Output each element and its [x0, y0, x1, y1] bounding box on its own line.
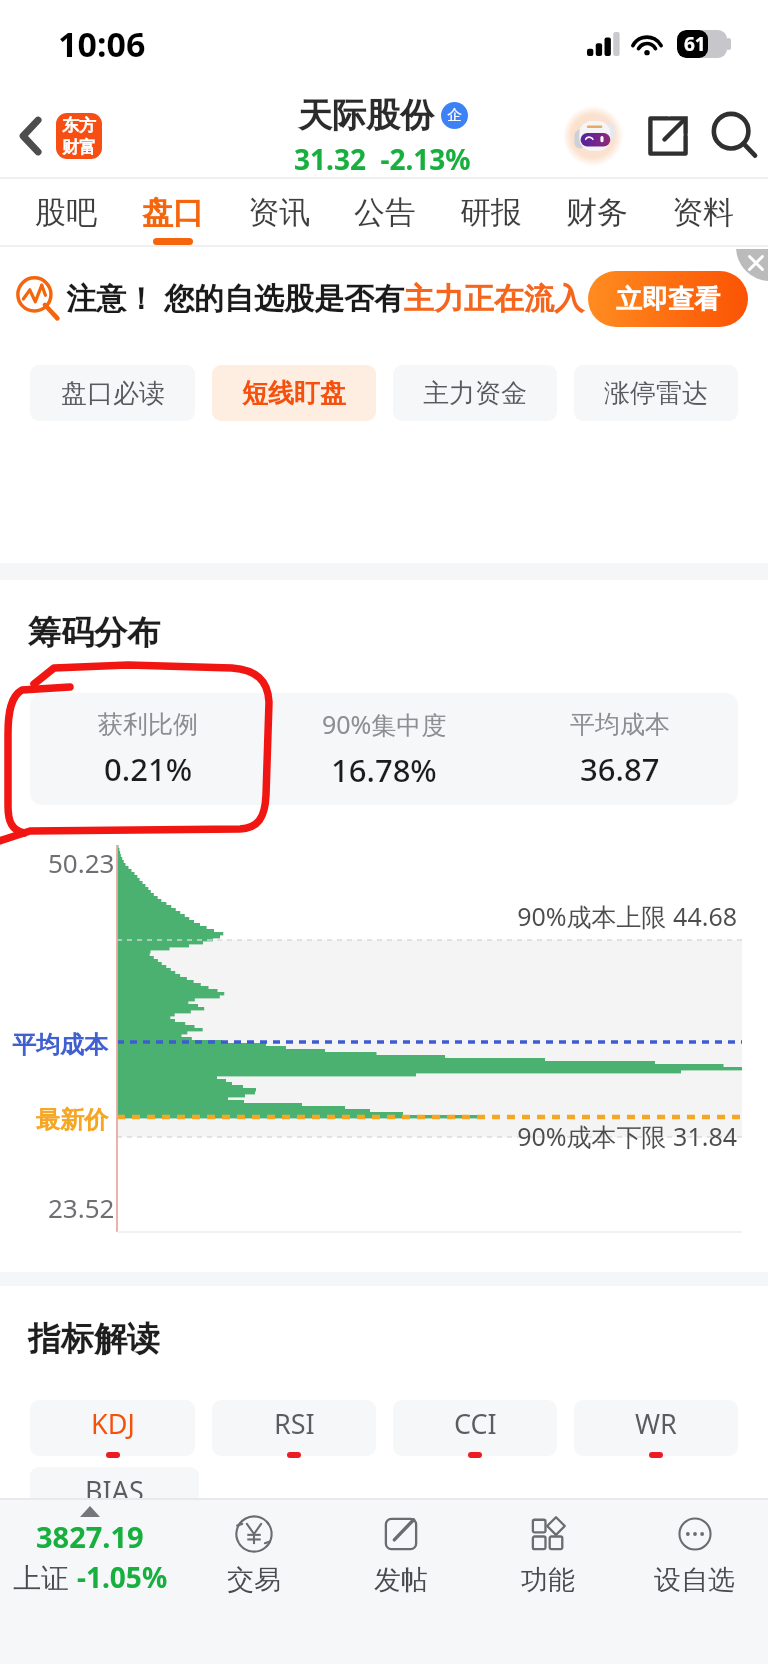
- button[interactable]: Search: [706, 108, 762, 164]
- staticText: RSI: [274, 1405, 315, 1442]
- staticText: 平均成本: [8, 1030, 108, 1060]
- button[interactable]: 盘口: [119, 179, 226, 247]
- button[interactable]: BIAS: [30, 1467, 199, 1523]
- staticText: 主力资金: [423, 377, 527, 410]
- staticText: 23.52: [48, 1190, 115, 1225]
- staticText: 东方: [62, 115, 96, 136]
- staticText: 16.78%: [331, 749, 437, 791]
- staticText: 发帖: [374, 1563, 428, 1597]
- staticText: -1.05%: [77, 1558, 168, 1596]
- button[interactable]: AI assistant: [562, 105, 624, 167]
- staticText: 50.23: [48, 845, 115, 880]
- staticText: 财务: [566, 193, 628, 232]
- button[interactable]: Back: [6, 111, 56, 161]
- staticText: 企: [447, 106, 462, 125]
- staticText: 90%集中度: [322, 707, 447, 741]
- button[interactable]: 研报: [438, 179, 544, 247]
- staticText: 获利比例: [98, 709, 198, 740]
- staticText: CCI: [454, 1405, 497, 1442]
- staticText: 筹码分布: [28, 612, 160, 654]
- staticText: BIAS: [85, 1472, 144, 1509]
- staticText: 10:06: [58, 21, 146, 67]
- staticText: 注意！: [66, 280, 156, 318]
- staticText: 功能: [521, 1563, 575, 1597]
- staticText: 公告: [354, 193, 416, 232]
- button[interactable]: 设自选: [621, 1513, 768, 1597]
- staticText: 3827.19: [36, 1517, 144, 1556]
- staticText: 您的自选股是否有: [164, 280, 404, 318]
- button[interactable]: 交易: [180, 1513, 327, 1597]
- staticText: 上证: [13, 1558, 77, 1596]
- button[interactable]: 公告: [332, 179, 438, 247]
- button[interactable]: 资料: [650, 179, 756, 247]
- button[interactable]: 股吧: [12, 179, 119, 247]
- staticText: WR: [635, 1405, 677, 1442]
- staticText: 资讯: [248, 193, 310, 232]
- staticText: 资料: [672, 193, 734, 232]
- staticText: 90%成本上限 44.68: [437, 899, 737, 933]
- staticText: 最新价: [8, 1105, 108, 1135]
- staticText: 平均成本: [570, 709, 670, 740]
- button[interactable]: RSI: [212, 1400, 376, 1456]
- button[interactable]: 资讯: [226, 179, 332, 247]
- staticText: 研报: [460, 193, 522, 232]
- button[interactable]: WR: [574, 1400, 738, 1456]
- staticText: 盘口必读: [61, 377, 165, 410]
- staticText: 设自选: [654, 1563, 735, 1597]
- staticText: 指标解读: [28, 1318, 160, 1360]
- staticText: KDJ: [91, 1405, 135, 1442]
- button[interactable]: Close banner: [724, 249, 768, 283]
- staticText: 61: [684, 31, 706, 57]
- staticText: 31.32 -2.13%: [294, 140, 471, 178]
- staticText: 交易: [227, 1563, 281, 1597]
- staticText: 天际股份: [298, 94, 434, 137]
- button[interactable]: 功能: [474, 1513, 621, 1597]
- button[interactable]: Share: [640, 108, 696, 164]
- button[interactable]: KDJ: [30, 1400, 195, 1456]
- staticText: 90%成本下限 31.84: [437, 1119, 737, 1153]
- button[interactable]: 财务: [544, 179, 650, 247]
- button[interactable]: 短线盯盘: [212, 365, 376, 421]
- button[interactable]: 立即查看: [588, 271, 748, 327]
- staticText: 股吧: [35, 193, 97, 232]
- staticText: 财富: [62, 137, 96, 158]
- staticText: 涨停雷达: [604, 377, 708, 410]
- staticText: 0.21%: [104, 748, 193, 790]
- staticText: 立即查看: [616, 283, 720, 316]
- button[interactable]: 3827.19: [0, 1506, 180, 1596]
- button[interactable]: 盘口必读: [30, 365, 195, 421]
- button[interactable]: 主力资金: [393, 365, 557, 421]
- staticText: 36.87: [580, 748, 660, 790]
- staticText: 盘口: [142, 193, 204, 232]
- staticText: 主力正在流入: [404, 280, 584, 318]
- staticText: 短线盯盘: [242, 377, 346, 410]
- button[interactable]: CCI: [393, 1400, 557, 1456]
- button[interactable]: East Money home: [56, 113, 102, 159]
- button[interactable]: 涨停雷达: [574, 365, 738, 421]
- button[interactable]: 发帖: [327, 1513, 474, 1597]
